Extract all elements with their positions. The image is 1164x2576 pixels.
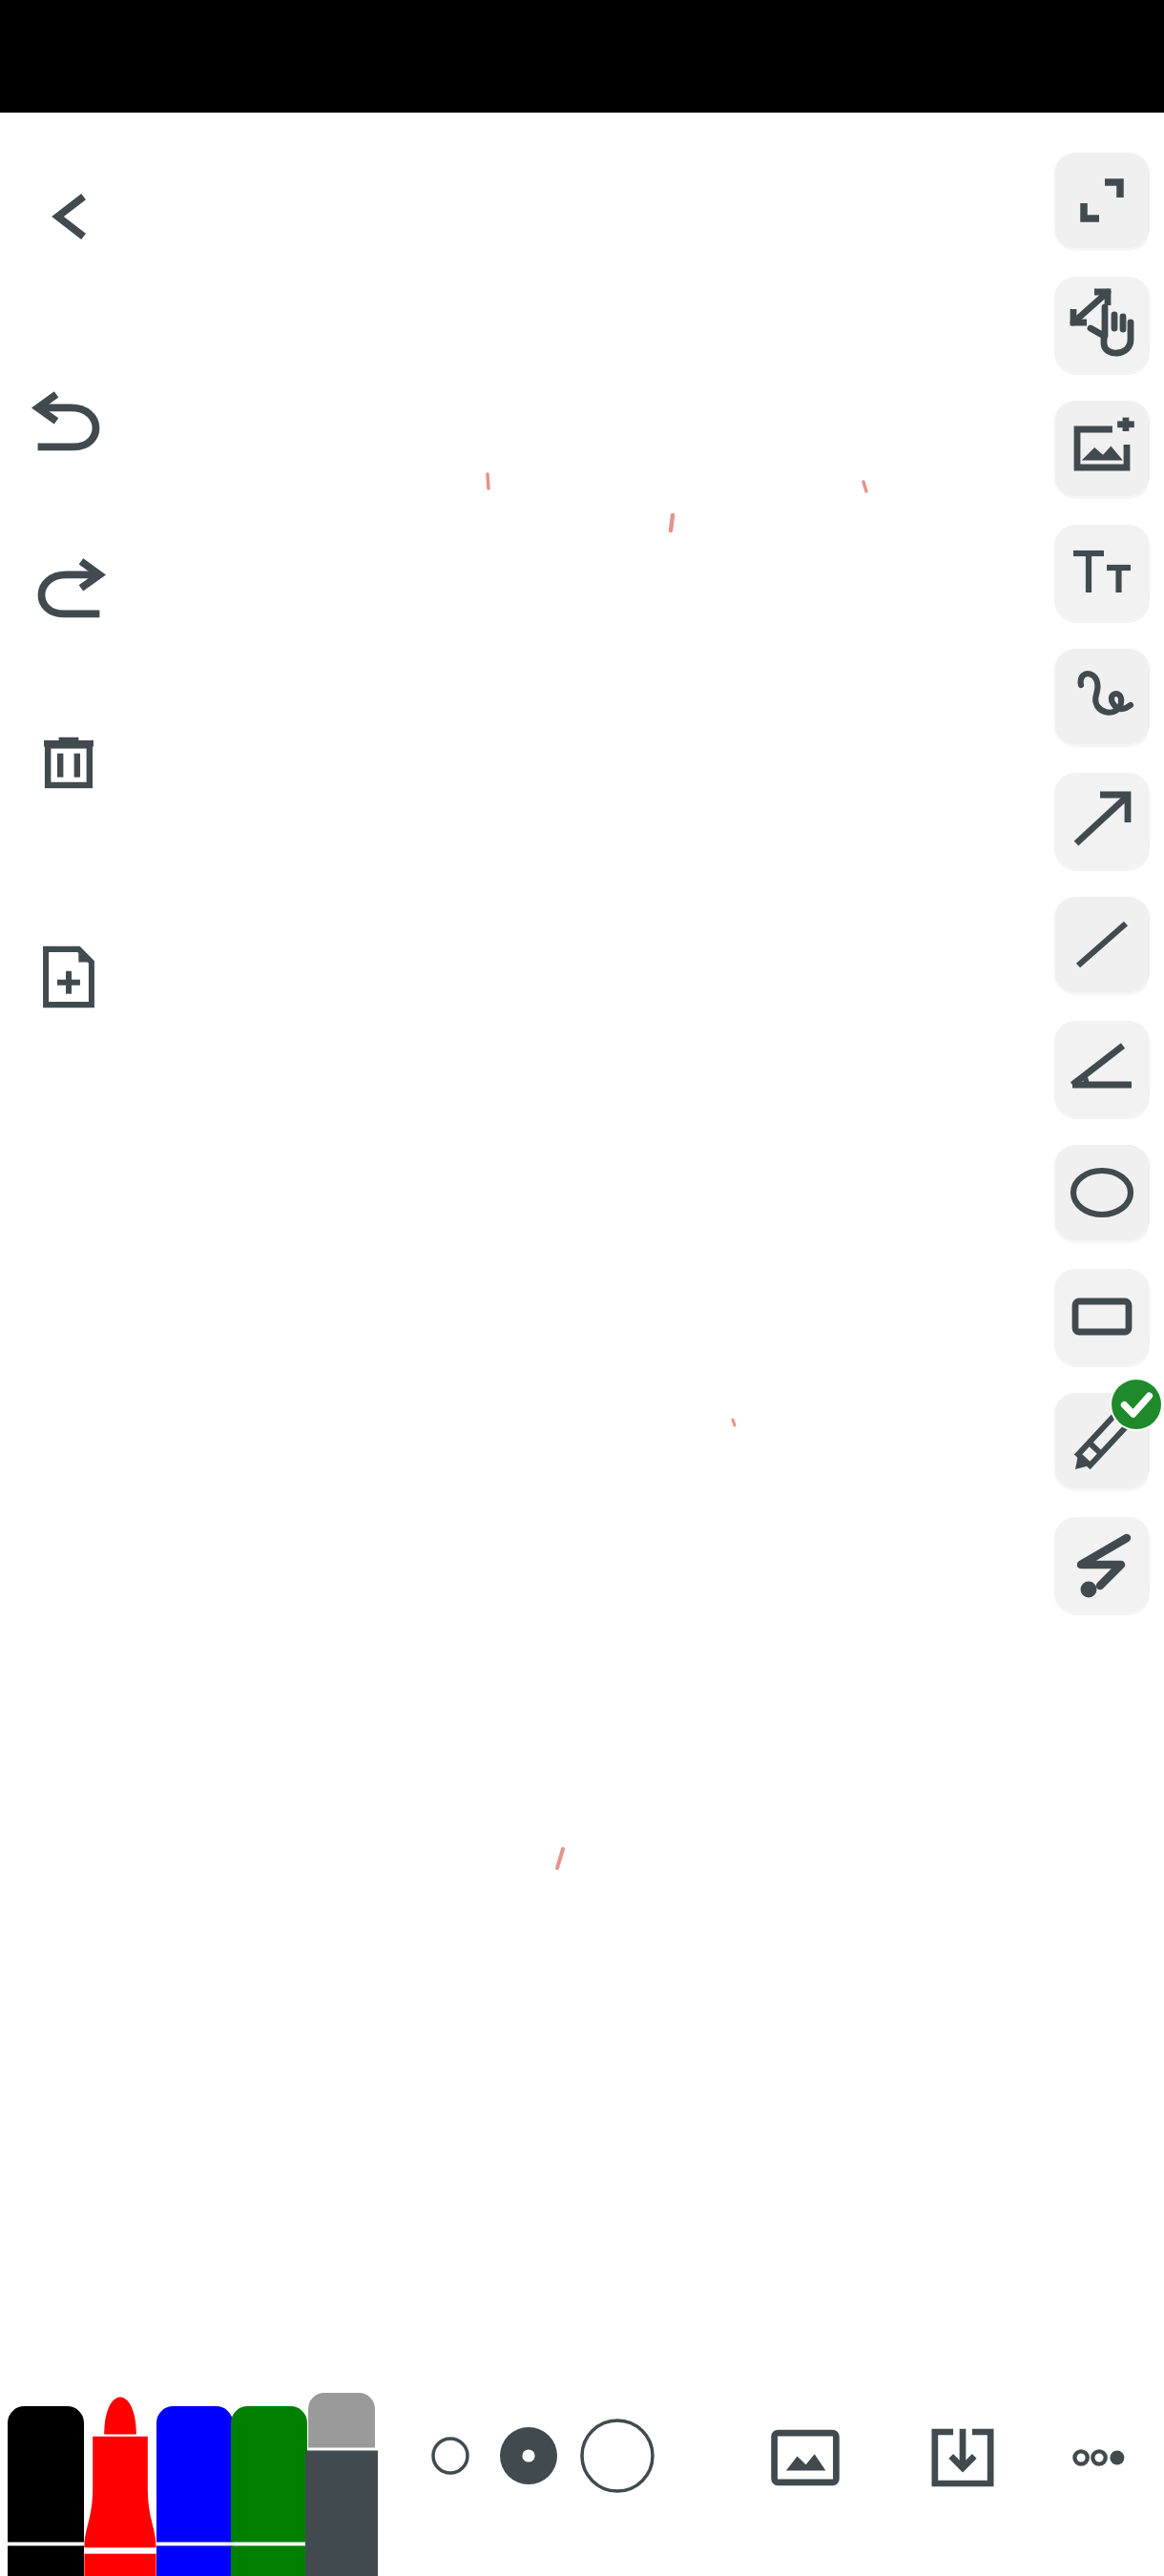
button[interactable]: Rectangle [1054,1269,1150,1364]
button[interactable]: Arrow [1054,773,1150,868]
button[interactable]: Text [1054,525,1150,620]
button[interactable]: Thin stroke [412,2418,488,2494]
button[interactable]: Pen [1054,1393,1150,1488]
button[interactable]: Circle [1054,1145,1150,1240]
button[interactable]: Back [19,167,118,266]
button[interactable]: Redo [17,544,120,647]
button[interactable]: More options [1048,2406,1151,2509]
button[interactable]: Thick stroke [561,2399,674,2512]
button[interactable]: Pan and zoom [1054,277,1150,372]
button[interactable]: Insert image [1054,401,1150,496]
button[interactable]: Fit to screen [1054,153,1150,248]
button[interactable]: Colour 2 [82,2374,158,2576]
button[interactable]: Medium stroke [479,2406,578,2505]
button[interactable]: Undo [17,377,120,480]
button[interactable]: Save [911,2406,1014,2509]
button[interactable]: Colour 4 [231,2406,307,2576]
button[interactable]: Freehand [1054,649,1150,744]
button[interactable]: Delete [19,712,118,811]
button[interactable]: Smart shape [1054,1517,1150,1612]
button[interactable]: Eraser [305,2393,378,2576]
button[interactable]: Colour 3 [156,2406,233,2576]
button[interactable]: Colour 1 [8,2406,84,2576]
button[interactable]: Gallery [754,2406,857,2509]
button[interactable]: Angle [1054,1021,1150,1116]
button[interactable]: New page [19,927,118,1027]
button[interactable]: Line [1054,897,1150,992]
